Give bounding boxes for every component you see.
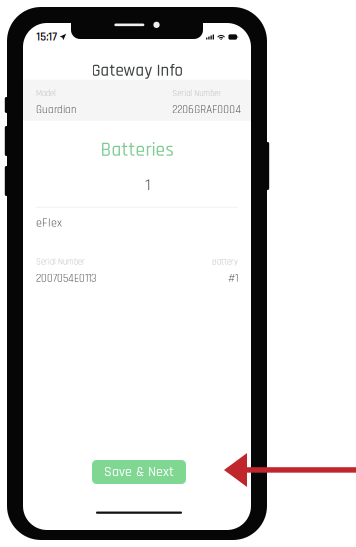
staticText: Batteries bbox=[100, 138, 173, 162]
staticText: Gateway Info bbox=[91, 60, 182, 81]
staticText: Save & Next bbox=[104, 463, 174, 481]
button[interactable]: Save & Next bbox=[92, 460, 186, 484]
staticText: Serial Number bbox=[36, 256, 85, 268]
staticText: #1 bbox=[228, 271, 238, 285]
staticText: Model bbox=[36, 88, 56, 99]
staticText: eFlex bbox=[36, 215, 62, 231]
staticText: 15:17 bbox=[36, 29, 57, 44]
staticText: 1 bbox=[145, 174, 151, 197]
staticText: Guardian bbox=[36, 103, 77, 117]
staticText: Battery bbox=[212, 256, 238, 268]
staticText: Serial Number bbox=[172, 88, 221, 99]
staticText: 2007054E0113 bbox=[36, 271, 96, 285]
staticText: 2206GRAF0004 bbox=[172, 103, 241, 117]
